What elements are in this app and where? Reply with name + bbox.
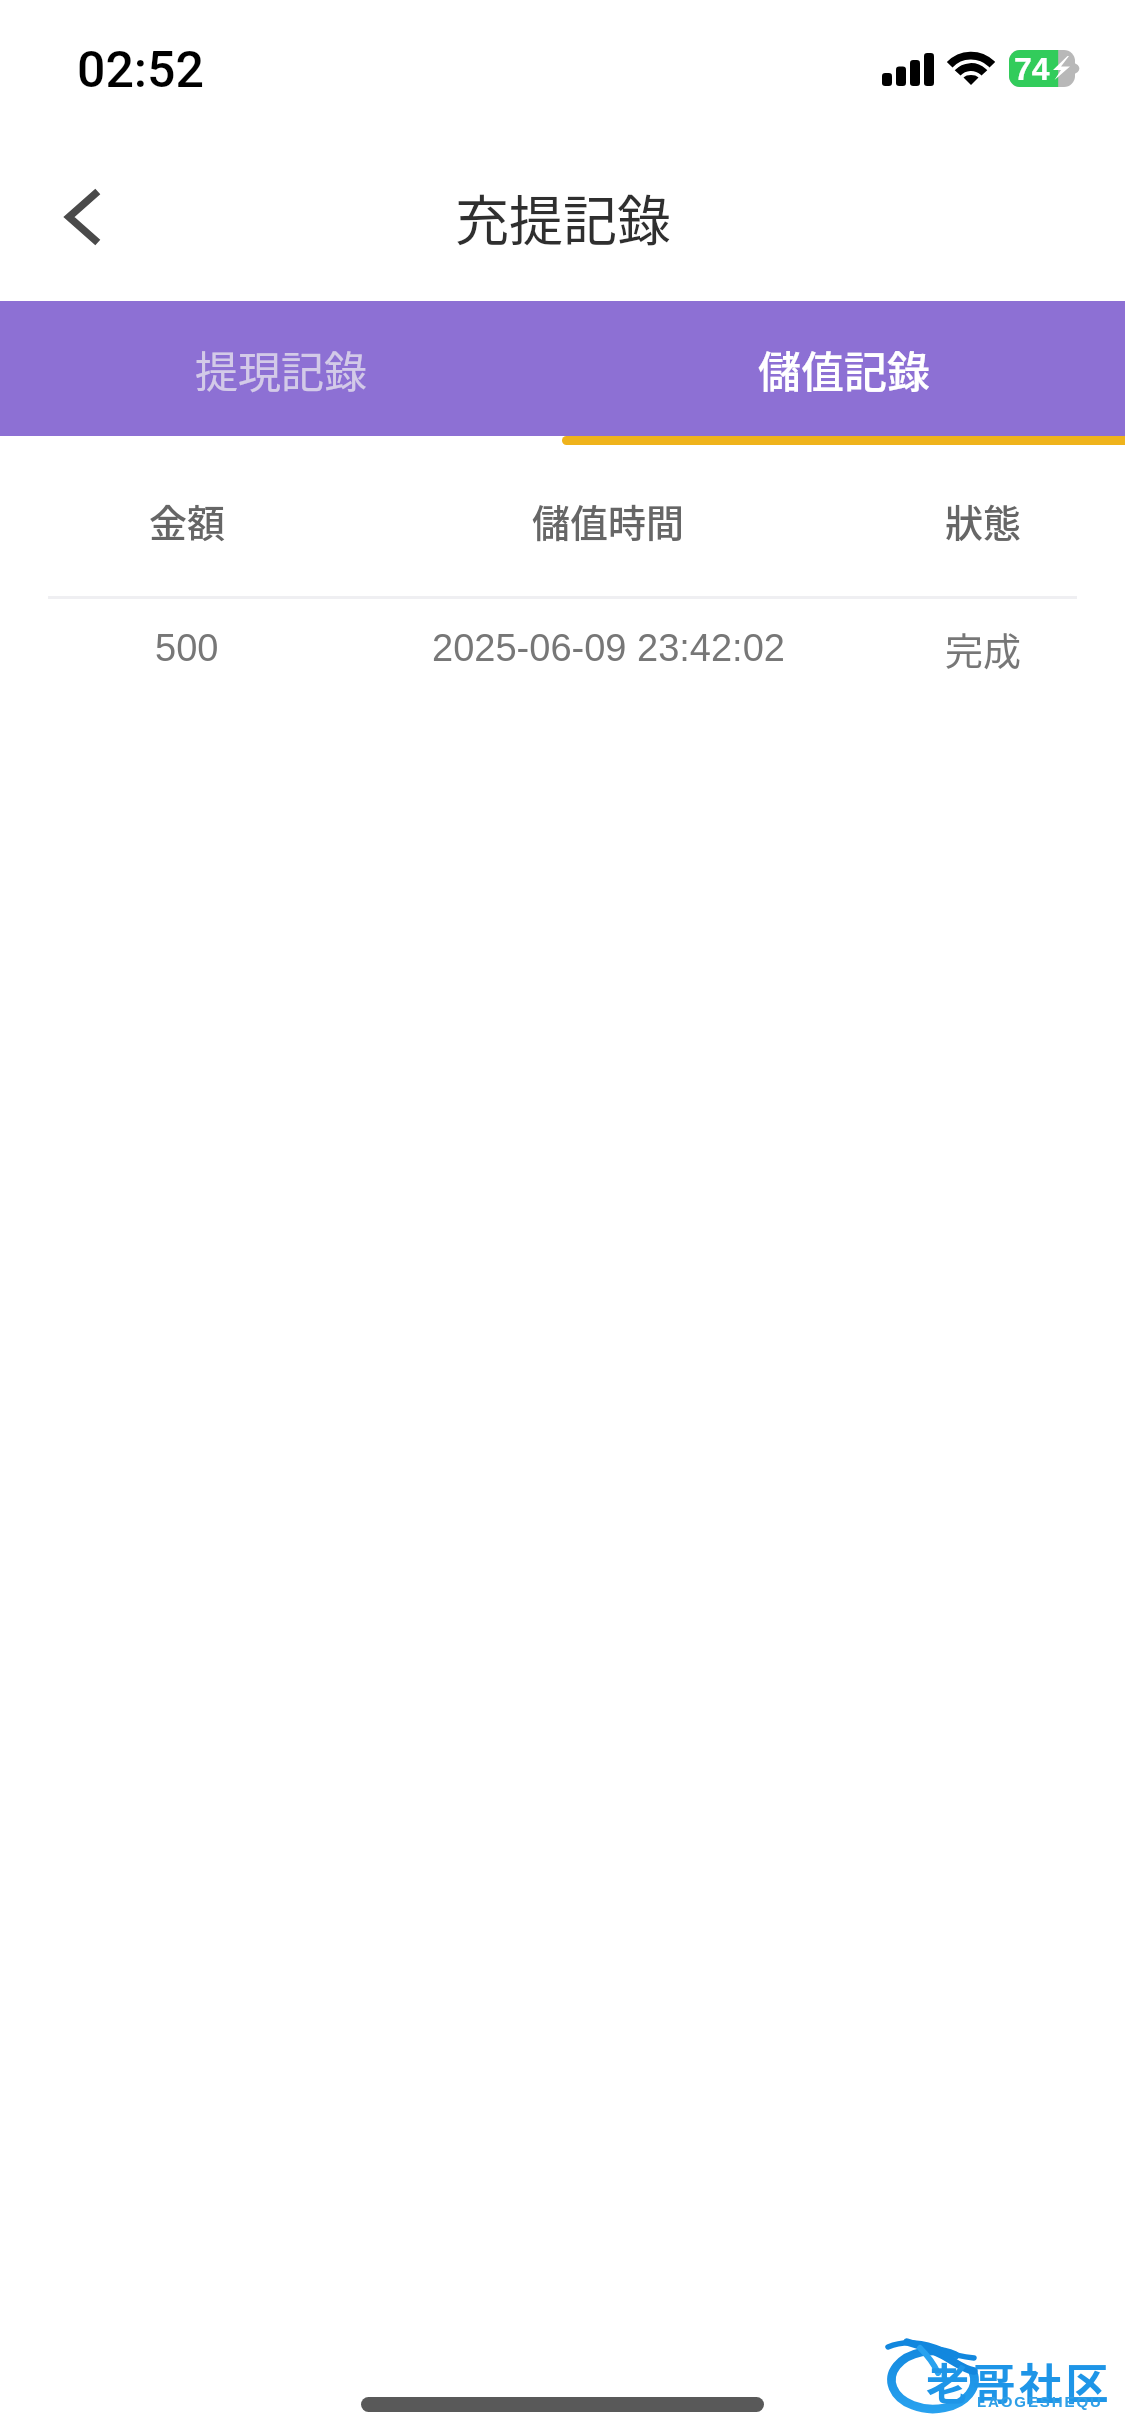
staticText: 02:52 xyxy=(77,41,204,100)
staticText: 74 xyxy=(1014,51,1050,87)
staticText: 充提記錄 xyxy=(455,178,671,256)
staticText: 儲值時間 xyxy=(532,493,685,548)
staticText: 500 xyxy=(155,627,219,669)
button[interactable]: Back xyxy=(28,162,138,272)
button[interactable]: 儲值記錄 xyxy=(562,301,1125,436)
staticText: 狀態 xyxy=(945,493,1022,548)
staticText: 提現記錄 xyxy=(195,338,367,400)
staticText: 儲值記錄 xyxy=(758,338,930,400)
staticText: 完成 xyxy=(945,621,1022,676)
button[interactable]: 提現記錄 xyxy=(0,301,562,436)
staticText: 2025-06-09 23:42:02 xyxy=(432,627,785,669)
staticText: 老哥社区 xyxy=(926,2350,1112,2412)
button[interactable]: 500 xyxy=(0,599,1125,697)
staticText: LAOGESHEQU xyxy=(977,2393,1103,2410)
staticText: 金額 xyxy=(149,493,226,548)
